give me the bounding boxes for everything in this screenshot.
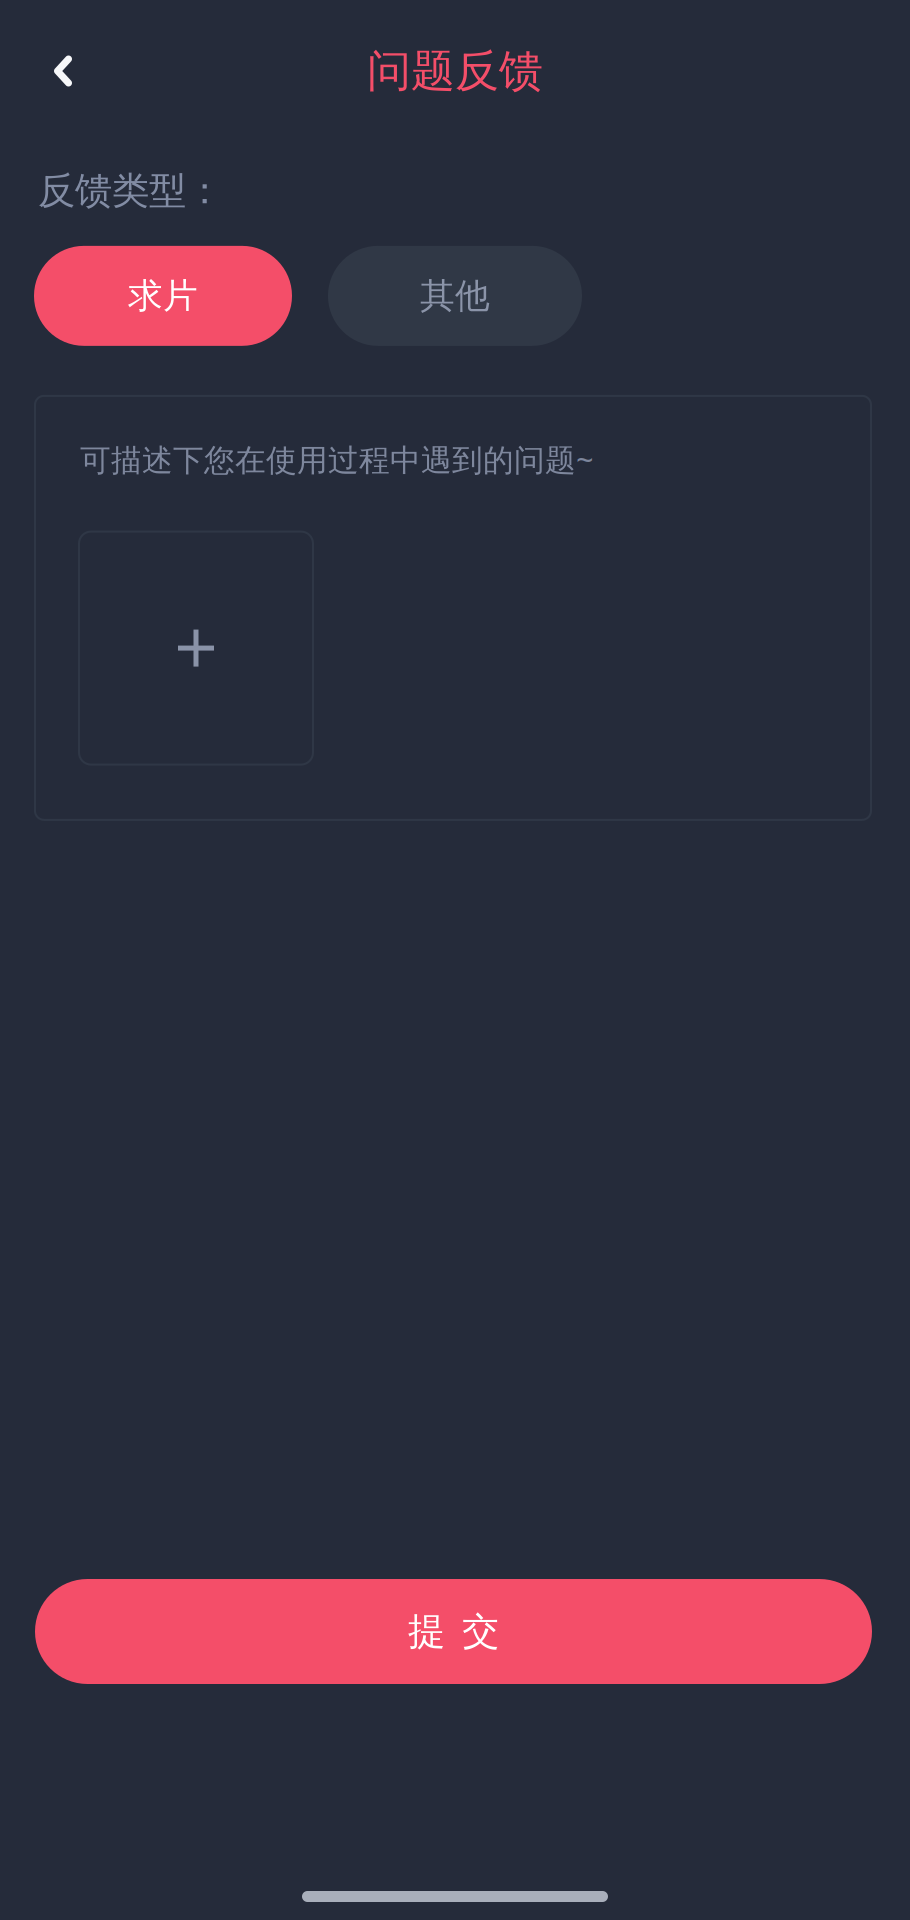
button[interactable]: Add photo xyxy=(79,532,313,765)
button[interactable]: Back xyxy=(0,28,106,114)
staticText: 可描述下您在使用过程中遇到的问题~ xyxy=(80,439,594,480)
staticText: 反馈类型： xyxy=(38,168,223,214)
staticText: 求片 xyxy=(128,275,198,317)
button[interactable]: 提 交 xyxy=(35,1579,872,1684)
staticText: 问题反馈 xyxy=(367,44,543,98)
staticText: 其他 xyxy=(420,275,490,317)
staticText: 提 交 xyxy=(408,1609,499,1654)
button[interactable]: 求片 xyxy=(34,246,292,346)
button[interactable]: 其他 xyxy=(328,246,582,346)
